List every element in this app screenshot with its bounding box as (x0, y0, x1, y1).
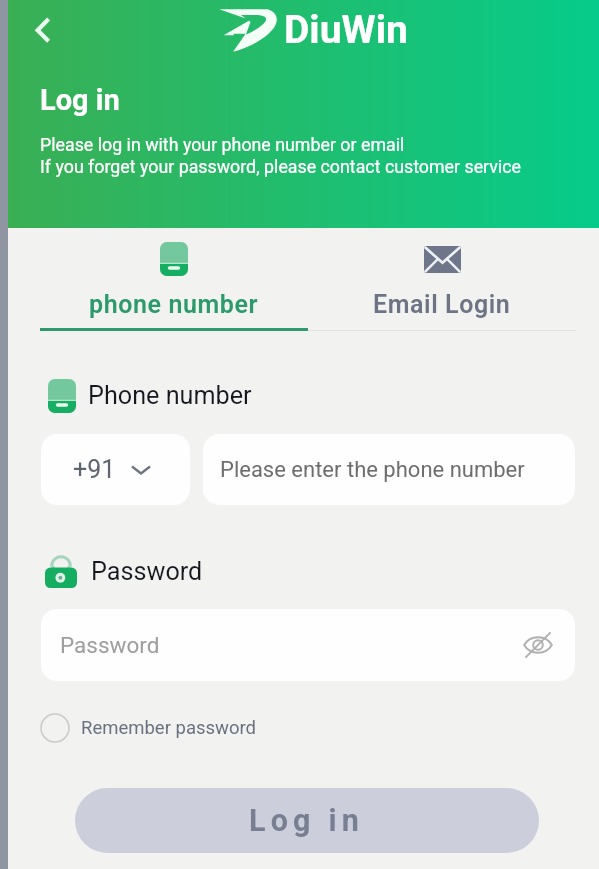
button[interactable]: phone number tab (40, 235, 308, 330)
button[interactable]: Email Login tab (308, 235, 576, 330)
staticText: Password (91, 557, 203, 587)
staticText: Email Login (373, 290, 511, 319)
staticText: +91 (73, 455, 116, 484)
staticText: Log in (40, 83, 120, 117)
button[interactable]: Remember password (40, 712, 257, 744)
staticText: Please log in with your phone number or … (40, 134, 405, 155)
button[interactable]: +91 (41, 434, 190, 505)
staticText: Phone number (88, 381, 252, 411)
staticText: Remember password (81, 717, 257, 739)
button[interactable]: Log in (75, 788, 539, 853)
staticText: DiuWin (284, 7, 408, 53)
staticText: If you forget your password, please cont… (40, 156, 521, 177)
button[interactable]: Show password (523, 630, 553, 660)
button[interactable]: Back (20, 8, 64, 52)
staticText: Please enter the phone number (220, 457, 525, 483)
staticText: phone number (89, 290, 259, 319)
button[interactable]: Please enter the phone number (203, 434, 575, 505)
button[interactable]: Password (41, 609, 575, 681)
staticText: Log in (249, 803, 365, 839)
staticText: Password (60, 632, 160, 658)
